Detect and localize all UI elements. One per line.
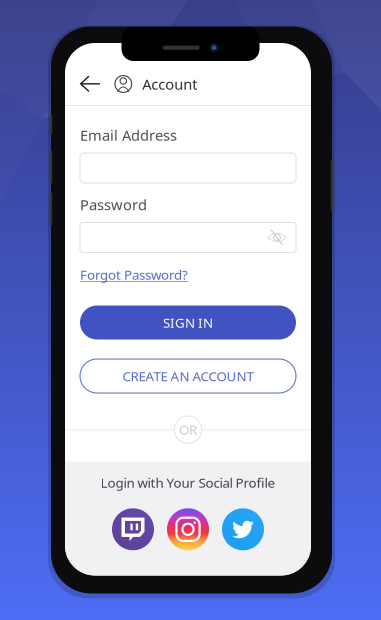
staticText: Password [80,195,147,214]
button[interactable]: Sign in with Instagram [167,508,209,550]
staticText: Email Address [80,125,177,145]
button[interactable]: Sign in with Twitter [222,508,264,550]
staticText: CREATE AN ACCOUNT [122,367,253,385]
button[interactable]: Sign in with Twitch [112,508,154,550]
button[interactable]: CREATE AN ACCOUNT [80,359,296,393]
button[interactable]: Account [65,69,311,99]
staticText: OR [179,421,197,438]
staticText: SIGN IN [163,314,213,331]
staticText: Forgot Password? [80,266,188,283]
button[interactable]: Forgot Password? [80,267,188,282]
button[interactable]: Show password [267,229,287,245]
staticText: Account [142,74,197,94]
button[interactable]: SIGN IN [80,305,296,339]
staticText: Login with Your Social Profile [100,474,275,491]
